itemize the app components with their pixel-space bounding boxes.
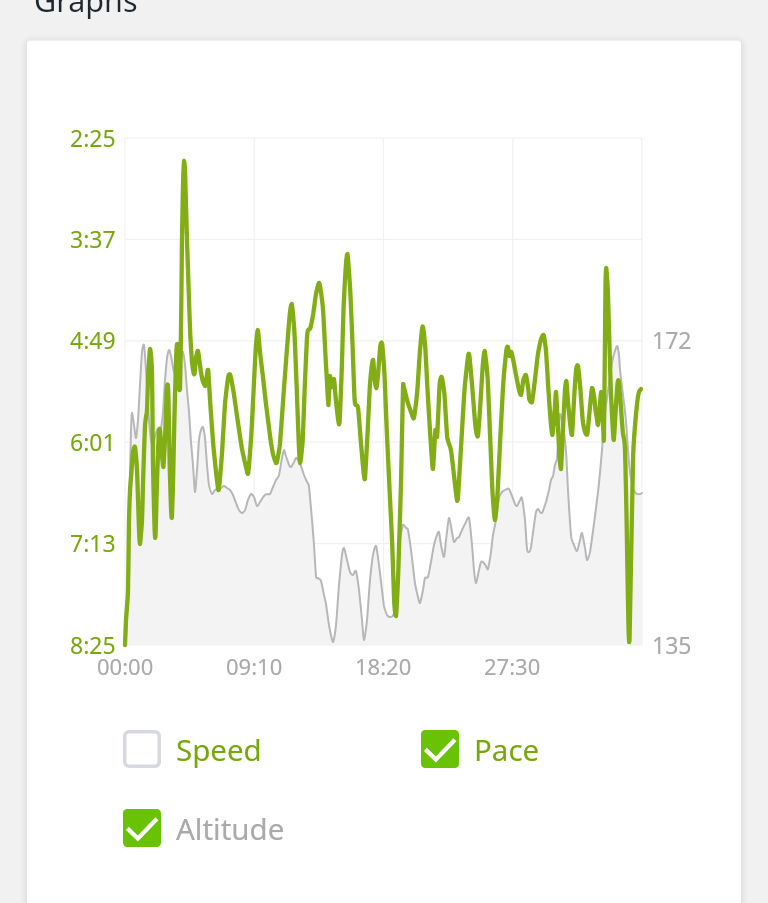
- button[interactable]: Speed: [123, 721, 272, 777]
- staticText: 09:10: [226, 651, 283, 681]
- staticText: 2:25: [70, 122, 116, 153]
- staticText: 00:00: [97, 651, 154, 681]
- staticText: 135: [652, 629, 692, 660]
- staticText: 3:37: [70, 223, 116, 254]
- staticText: 6:01: [70, 426, 116, 457]
- staticText: 27:30: [484, 651, 541, 681]
- staticText: Altitude: [176, 808, 285, 848]
- staticText: 8:25: [70, 629, 116, 660]
- staticText: 4:49: [70, 324, 116, 355]
- staticText: Speed: [176, 729, 262, 769]
- staticText: 18:20: [355, 651, 412, 681]
- button[interactable]: Pace: [421, 721, 550, 777]
- staticText: 7:13: [70, 527, 116, 558]
- staticText: Pace: [474, 729, 540, 769]
- staticText: Graphs: [34, 0, 138, 21]
- staticText: 172: [652, 324, 692, 355]
- button[interactable]: Altitude: [123, 800, 295, 856]
